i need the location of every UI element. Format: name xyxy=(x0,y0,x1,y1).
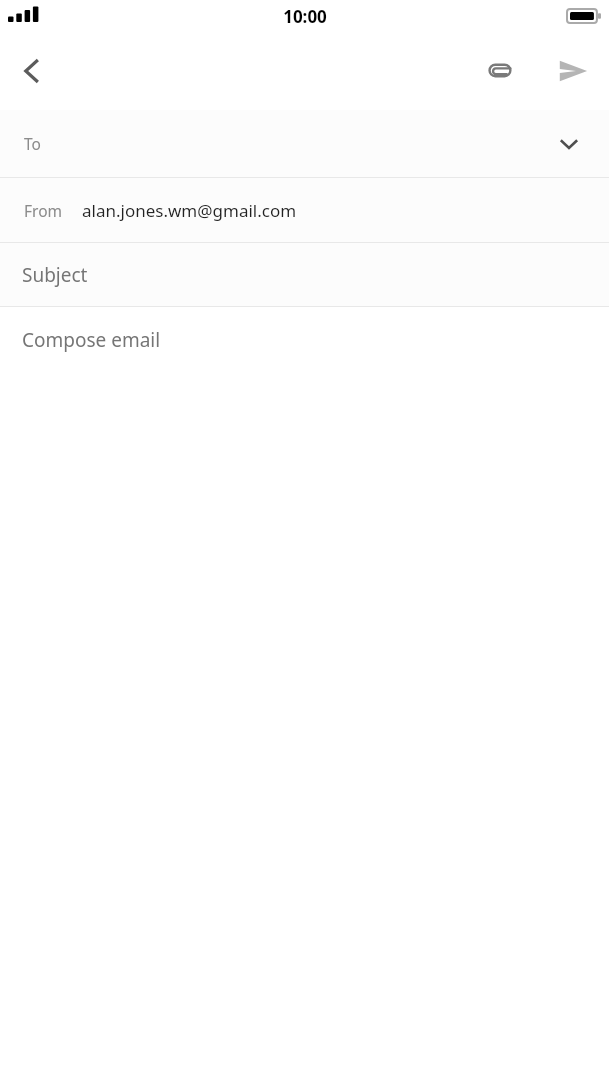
staticText: To xyxy=(24,133,41,154)
button[interactable]: To xyxy=(0,110,609,177)
button[interactable]: Send xyxy=(547,45,599,97)
button[interactable]: Show Cc and Bcc xyxy=(547,122,591,166)
button[interactable]: Compose email xyxy=(0,307,609,1084)
button[interactable]: Subject xyxy=(0,243,609,306)
button[interactable]: From xyxy=(0,178,609,242)
staticText: Compose email xyxy=(22,327,161,353)
staticText: Subject xyxy=(22,262,88,288)
staticText: 10:00 xyxy=(283,5,327,28)
staticText: From xyxy=(24,200,63,221)
button[interactable]: Back xyxy=(6,45,58,97)
staticText: alan.jones.wm@gmail.com xyxy=(82,199,297,222)
button[interactable]: Attach file xyxy=(475,45,527,97)
